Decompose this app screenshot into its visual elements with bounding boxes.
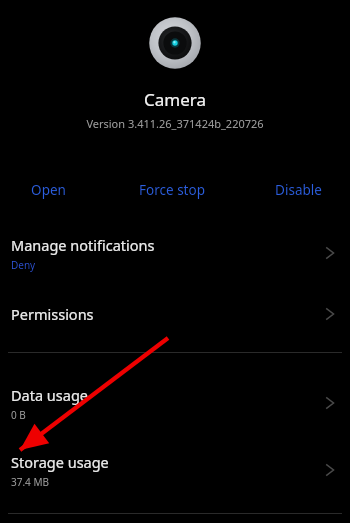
other: Data usage bbox=[322, 395, 338, 411]
staticText: Manage notifications bbox=[11, 235, 155, 255]
staticText: 0 B bbox=[11, 408, 26, 422]
button[interactable]: Manage notifications bbox=[0, 222, 350, 284]
button[interactable]: Permissions bbox=[0, 288, 350, 340]
button[interactable]: Disable bbox=[247, 174, 350, 206]
staticText: Deny bbox=[11, 258, 36, 272]
other: Storage usage bbox=[322, 462, 338, 478]
staticText: Disable bbox=[275, 181, 322, 199]
other: Manage notifications bbox=[322, 245, 338, 261]
button[interactable]: Storage usage bbox=[0, 441, 350, 499]
other: Permissions bbox=[322, 306, 338, 322]
staticText: Version 3.411.26_371424b_220726 bbox=[86, 116, 264, 131]
button[interactable]: Force stop bbox=[97, 174, 247, 206]
staticText: Open bbox=[31, 181, 66, 199]
staticText: Force stop bbox=[139, 181, 205, 199]
staticText: Permissions bbox=[11, 304, 94, 324]
staticText: 37.4 MB bbox=[11, 475, 50, 489]
staticText: Data usage bbox=[11, 385, 88, 405]
button[interactable]: Data usage bbox=[0, 374, 350, 432]
button[interactable]: Open bbox=[0, 174, 97, 206]
staticText: Storage usage bbox=[11, 452, 109, 472]
staticText: Camera bbox=[144, 88, 206, 111]
